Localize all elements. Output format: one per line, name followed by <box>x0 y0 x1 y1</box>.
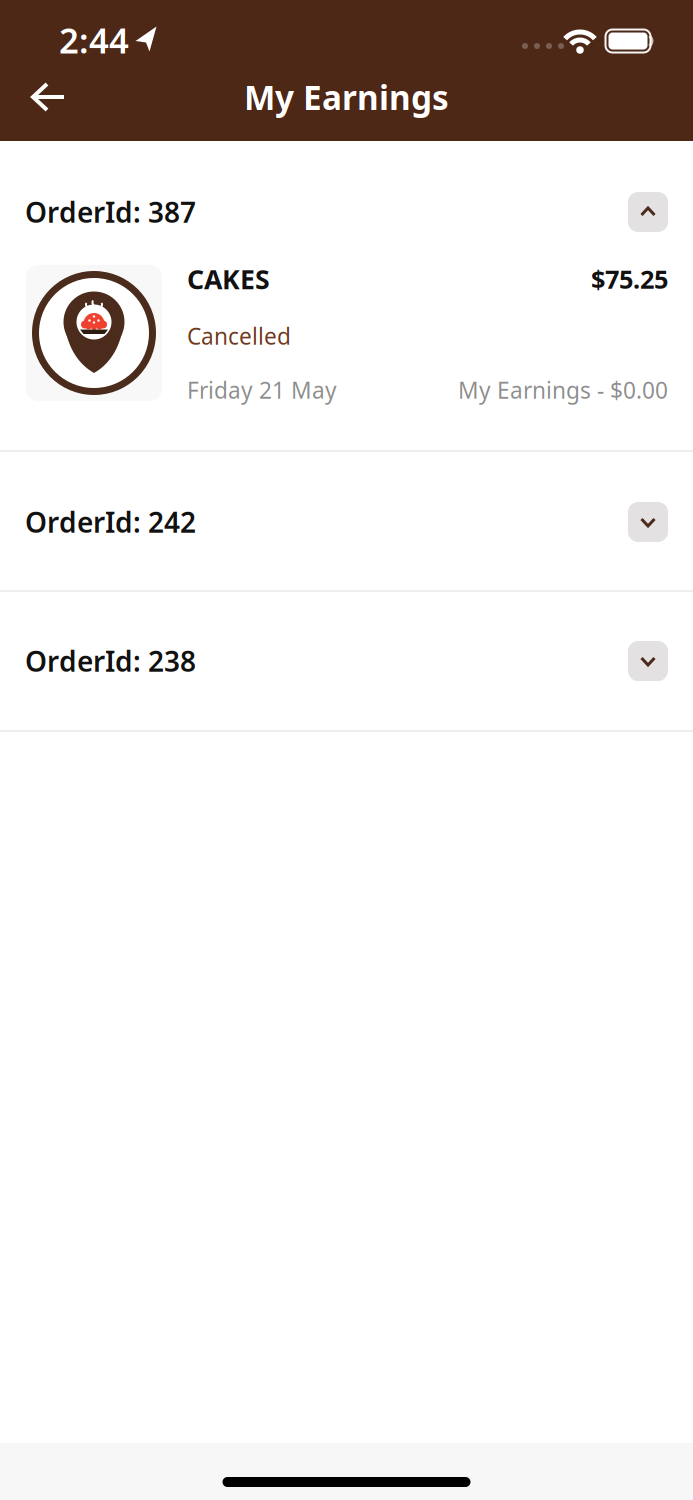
button[interactable] <box>30 82 66 112</box>
button[interactable]: OrderId: 387 <box>25 190 668 234</box>
button[interactable] <box>628 192 668 232</box>
staticText: OrderId: 242 <box>25 503 196 541</box>
button[interactable]: OrderId: 238 <box>25 639 668 683</box>
staticText: OrderId: 238 <box>25 642 196 680</box>
staticText: OrderId: 387 <box>25 193 196 231</box>
staticText: $75.25 <box>591 262 668 296</box>
button[interactable] <box>628 502 668 542</box>
staticText: 2:44 <box>59 17 129 63</box>
button[interactable]: OrderId: 242 <box>25 500 668 544</box>
staticText: Friday 21 May <box>187 375 337 405</box>
staticText: Cancelled <box>187 321 291 351</box>
button[interactable] <box>628 641 668 681</box>
staticText: CAKES <box>187 261 270 297</box>
staticText: My Earnings <box>244 75 449 119</box>
staticText: My Earnings - $0.00 <box>458 375 668 405</box>
